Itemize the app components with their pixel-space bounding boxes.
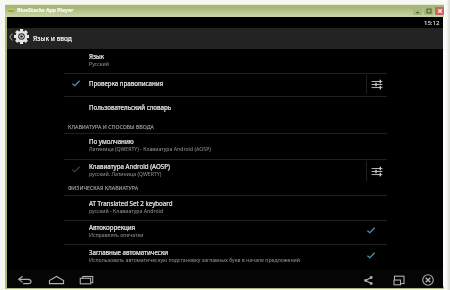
button[interactable]: Проверка правописания bbox=[7, 73, 443, 96]
button[interactable]: Клавиатура Android (AOSP) bbox=[7, 159, 443, 183]
staticText: русский, Латиница (QWERTY) bbox=[89, 170, 162, 177]
button[interactable]: AT Translated Set 2 keyboard bbox=[7, 195, 443, 221]
staticText: Пользовательский словарь bbox=[89, 103, 172, 111]
button[interactable]: Автокоррекция bbox=[7, 220, 443, 244]
staticText: AT Translated Set 2 keyboard bbox=[89, 199, 173, 207]
staticText: Использовать автоматическую подстановку … bbox=[89, 256, 301, 263]
button[interactable]: Настройки bbox=[369, 163, 385, 179]
button[interactable]: Недавние приложения bbox=[77, 271, 95, 289]
staticText: русский - Клавиатура Android bbox=[89, 207, 164, 214]
button[interactable]: Свернуть bbox=[413, 7, 422, 15]
button[interactable]: Снимок экрана bbox=[390, 271, 408, 289]
staticText: BlueStacks App Player bbox=[17, 7, 74, 14]
staticText: Автокоррекция bbox=[89, 223, 136, 231]
staticText: ФИЗИЧЕСКАЯ КЛАВИАТУРА bbox=[68, 184, 139, 191]
button[interactable]: Язык bbox=[7, 49, 443, 74]
button[interactable]: Главный экран bbox=[47, 271, 65, 289]
button[interactable]: Закрыть bbox=[419, 271, 437, 289]
staticText: Русский bbox=[89, 60, 109, 67]
staticText: Клавиатура Android (AOSP) bbox=[89, 162, 170, 170]
button[interactable]: Заглавные автоматически bbox=[7, 244, 443, 269]
staticText: Исправлять опечатки bbox=[89, 231, 144, 238]
staticText: Заглавные автоматически bbox=[89, 248, 169, 256]
button[interactable]: Развернуть bbox=[424, 7, 433, 15]
staticText: КЛАВИАТУРА И СПОСОБЫ ВВОДА bbox=[68, 123, 154, 130]
staticText: Язык и ввод bbox=[33, 34, 72, 43]
staticText: По умолчанию bbox=[89, 137, 134, 145]
button[interactable]: Язык и ввод bbox=[7, 28, 443, 49]
button[interactable]: Поделиться bbox=[359, 271, 377, 289]
button[interactable]: Пользовательский словарь bbox=[7, 96, 443, 121]
staticText: 15:12 bbox=[424, 19, 440, 27]
button[interactable]: Закрыть bbox=[435, 7, 444, 15]
staticText: Латиница (QWERTY) - Клавиатура Android (… bbox=[89, 145, 211, 152]
button[interactable]: Назад bbox=[16, 271, 34, 289]
staticText: Язык bbox=[89, 52, 104, 60]
button[interactable]: По умолчанию bbox=[7, 133, 443, 159]
staticText: Проверка правописания bbox=[89, 79, 164, 87]
button[interactable]: Настройки bbox=[369, 76, 385, 92]
